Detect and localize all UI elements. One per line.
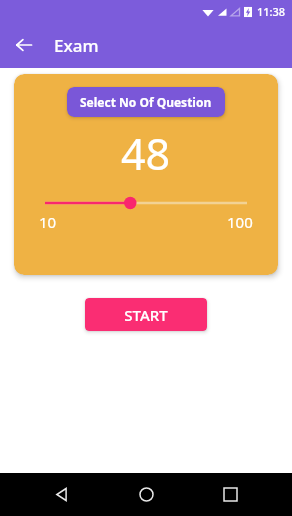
button[interactable]: Select No Of Question [67,87,225,117]
staticText: 100 [227,212,253,232]
button[interactable]: START [85,298,207,331]
staticText: 11:38 [257,4,286,19]
staticText: START [124,305,168,325]
staticText: Exam [54,34,99,57]
staticText: 10 [39,212,57,232]
staticText: Select No Of Question [80,94,212,110]
button[interactable]: Recent apps [208,473,252,516]
staticText: 48 [121,124,171,183]
button[interactable]: Back [7,28,41,62]
button[interactable]: Number of questions slider [45,195,247,211]
button[interactable]: Home [124,473,168,516]
button[interactable]: Back [40,473,84,516]
